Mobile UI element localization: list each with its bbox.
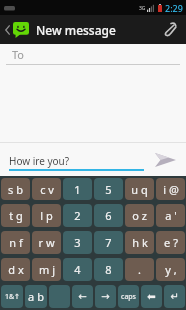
staticText: d x [8,262,24,277]
staticText: a b [28,289,44,304]
button[interactable]: m j [32,258,61,281]
button[interactable]: u q [125,178,154,200]
button[interactable]: n f [1,231,30,254]
button[interactable]: h k [125,231,154,254]
staticText: 3 [74,235,81,250]
button[interactable]: l p [32,204,61,227]
staticText: 3G [139,5,146,12]
button[interactable]: Move right [95,285,116,308]
staticText: e ? [164,235,178,250]
button[interactable]: Backspace [141,285,162,308]
staticText: u q [131,182,148,197]
button[interactable]: 6 [94,204,123,227]
staticText: i @ [163,182,179,197]
staticText: ↵ [170,291,179,303]
staticText: New message [36,22,116,38]
button[interactable]: Enter [164,285,185,308]
staticText: ← [78,291,87,303]
button[interactable]: o z [125,204,154,227]
staticText: 2:29 [165,2,183,14]
button[interactable]: 7 [94,231,123,254]
button[interactable]: 4 [63,258,92,281]
button[interactable]: 8 [94,258,123,281]
button[interactable]: 1&↑ [1,285,23,308]
button[interactable]: Attach [154,15,184,44]
staticText: 1 [74,182,81,197]
button[interactable]: 5 [94,178,123,200]
button[interactable]: Navigate up [3,15,31,44]
staticText: o z [132,208,147,223]
staticText: → [101,291,110,303]
button[interactable]: Send [144,143,186,176]
staticText: 8 [105,262,112,277]
staticText: c v [40,182,54,197]
staticText: s b [8,182,23,197]
staticText: caps [121,292,136,302]
button[interactable]: 2 [63,204,92,227]
button[interactable]: d x [1,258,30,281]
staticText: n f [9,235,23,250]
staticText: 7 [105,235,112,250]
button[interactable]: 3 [63,231,92,254]
staticText: . [138,262,141,277]
button[interactable]: Move left [72,285,93,308]
staticText: ⬅ [147,291,156,303]
button[interactable]: 1 [63,178,92,200]
staticText: m j [39,262,55,277]
staticText: a ' [165,208,177,223]
staticText: t g [9,208,23,223]
staticText: h k [132,235,148,250]
staticText: y , [165,262,177,277]
staticText: 2 [74,208,81,223]
staticText: To [12,47,25,62]
button[interactable]: a ' [156,204,185,227]
staticText: How ire you? [9,154,70,168]
button[interactable]: t g [1,204,30,227]
button[interactable]: . [125,258,154,281]
button[interactable]: e ? [156,231,185,254]
staticText: r w [38,235,55,250]
button[interactable]: c v [32,178,61,200]
button[interactable]: caps [118,285,139,308]
staticText: 6 [105,208,112,223]
staticText: l p [40,208,53,223]
button[interactable]: y , [156,258,185,281]
staticText: 1&↑ [5,292,20,302]
button[interactable]: a b [25,285,47,308]
button[interactable]: r w [32,231,61,254]
staticText: 4 [74,262,81,277]
staticText: 5 [105,182,112,197]
button[interactable]: Space [49,285,70,308]
button[interactable]: How ire you? [9,153,144,169]
button[interactable]: To [0,44,186,64]
button[interactable]: s b [1,178,30,200]
button[interactable]: i @ [156,178,185,200]
